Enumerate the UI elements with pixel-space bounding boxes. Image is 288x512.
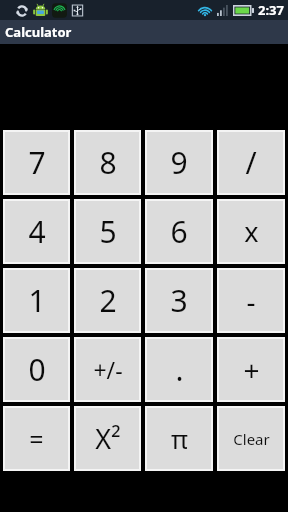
staticText: 0 [28,349,46,390]
button[interactable]: π [145,406,213,471]
button[interactable]: 4 [3,199,70,264]
staticText: 9 [170,142,188,183]
button[interactable]: + [217,337,285,402]
button[interactable]: 1 [3,268,70,333]
button[interactable]: - [217,268,285,333]
staticText: 7 [28,142,46,183]
button[interactable]: Clear [217,406,285,471]
button[interactable]: x [217,199,285,264]
button[interactable]: 8 [74,130,141,195]
button[interactable]: = [3,406,70,471]
staticText: π [171,421,188,456]
button[interactable]: 7 [3,130,70,195]
staticText: . [175,349,184,390]
staticText: / [245,142,257,183]
staticText: - [246,282,256,320]
button[interactable]: . [145,337,213,402]
staticText: 2:37 [258,1,284,19]
staticText: 8 [99,142,117,183]
staticText: 6 [170,211,188,252]
button[interactable]: 9 [145,130,213,195]
button[interactable]: 2 [74,268,141,333]
button[interactable]: +/- [74,337,141,402]
staticText: 4 [28,211,46,252]
button[interactable]: 0 [3,337,70,402]
staticText: X² [95,420,121,457]
button[interactable]: X² [74,406,141,471]
button[interactable]: 6 [145,199,213,264]
button[interactable]: 5 [74,199,141,264]
staticText: Calculator [5,23,72,41]
button[interactable]: / [217,130,285,195]
staticText: 3 [170,280,188,321]
staticText: 2 [99,280,117,321]
staticText: 5 [99,211,117,252]
staticText: +/- [93,354,123,385]
button[interactable]: 3 [145,268,213,333]
staticText: x [244,213,259,250]
staticText: = [29,422,44,456]
staticText: Clear [233,429,270,449]
staticText: + [243,351,260,389]
staticText: 1 [28,280,46,321]
